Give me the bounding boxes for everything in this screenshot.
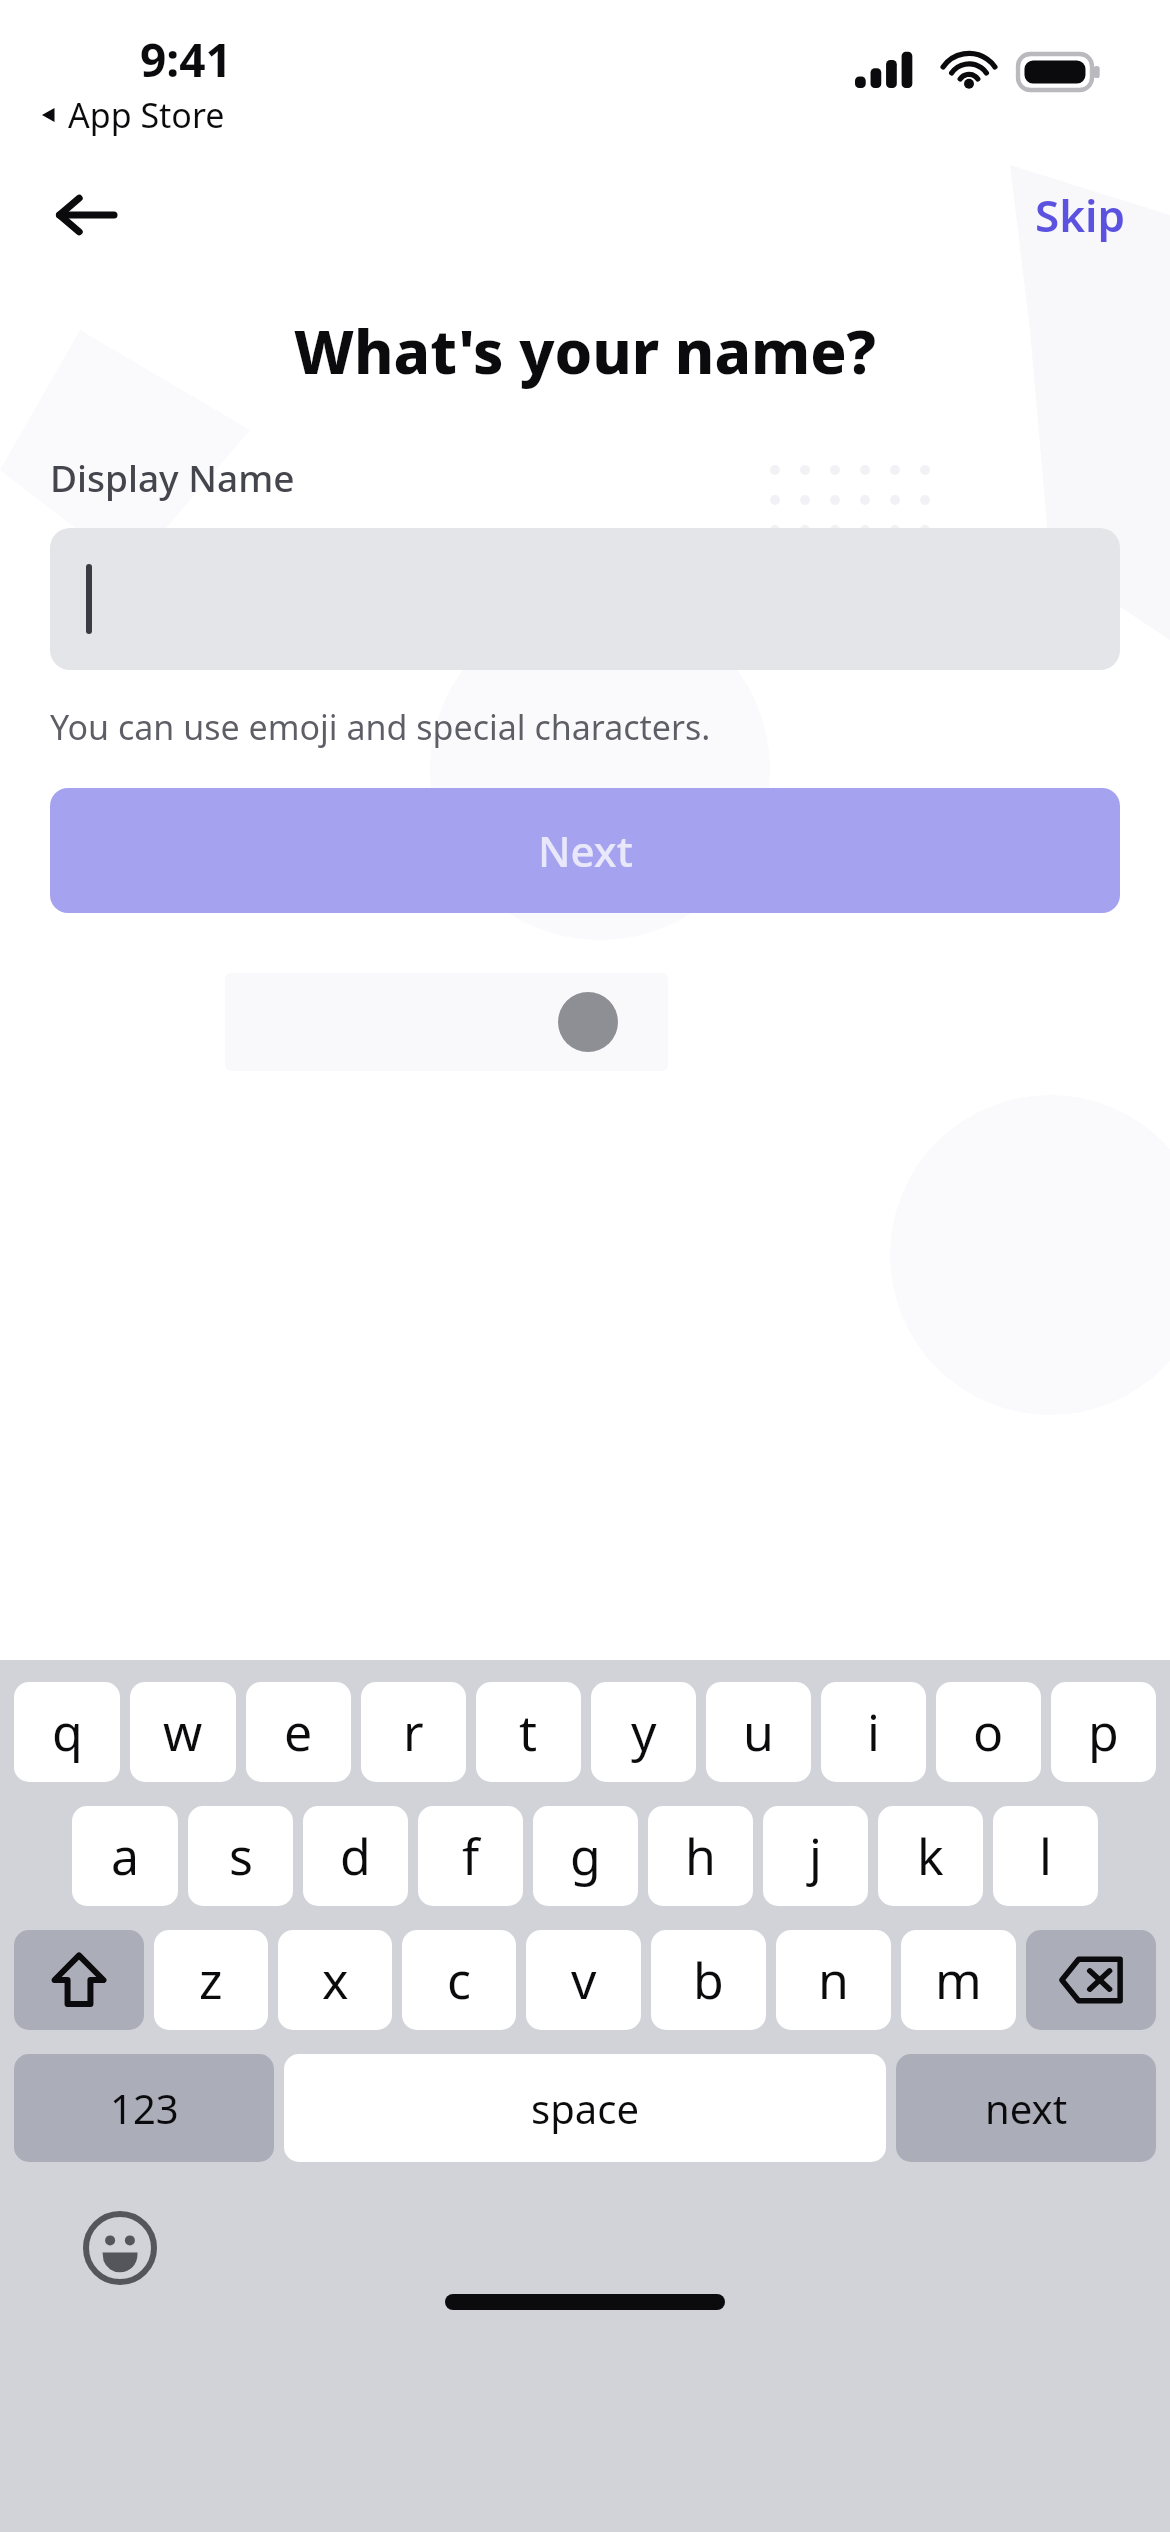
button[interactable]: i: [821, 1682, 926, 1782]
button[interactable]: o: [936, 1682, 1041, 1782]
button[interactable]: 123: [14, 2054, 274, 2162]
button[interactable]: next: [896, 2054, 1156, 2162]
button[interactable]: Next: [50, 788, 1120, 913]
staticText: App Store: [68, 92, 225, 138]
button[interactable]: y: [591, 1682, 696, 1782]
button[interactable]: Back: [30, 160, 140, 270]
staticText: q: [52, 1698, 83, 1766]
button[interactable]: Shift: [14, 1930, 144, 2030]
button[interactable]: c: [402, 1930, 516, 2030]
button[interactable]: w: [130, 1682, 236, 1782]
staticText: c: [447, 1946, 471, 2014]
staticText: p: [1088, 1698, 1119, 1766]
button[interactable]: Backspace: [1026, 1930, 1156, 2030]
staticText: v: [571, 1946, 597, 2014]
staticText: n: [818, 1946, 849, 2014]
staticText: space: [531, 2081, 639, 2135]
button[interactable]: g: [533, 1806, 638, 1906]
staticText: y: [631, 1698, 657, 1766]
staticText: 9:41: [140, 28, 232, 91]
button[interactable]: p: [1051, 1682, 1156, 1782]
button[interactable]: Emoji: [78, 2206, 162, 2290]
button[interactable]: e: [246, 1682, 351, 1782]
staticText: i: [867, 1698, 880, 1766]
button[interactable]: d: [303, 1806, 408, 1906]
button[interactable]: v: [526, 1930, 641, 2030]
staticText: m: [935, 1946, 982, 2014]
button[interactable]: u: [706, 1682, 811, 1782]
staticText: l: [1039, 1822, 1052, 1890]
button[interactable]: x: [278, 1930, 392, 2030]
staticText: h: [685, 1822, 716, 1890]
button[interactable]: q: [14, 1682, 120, 1782]
button[interactable]: l: [993, 1806, 1098, 1906]
button[interactable]: k: [878, 1806, 983, 1906]
button[interactable]: Toggle: [225, 973, 668, 1071]
staticText: w: [163, 1698, 203, 1766]
button[interactable]: m: [901, 1930, 1016, 2030]
button[interactable]: b: [651, 1930, 766, 2030]
staticText: 123: [110, 2081, 179, 2135]
staticText: e: [284, 1698, 313, 1766]
staticText: j: [809, 1822, 822, 1890]
button[interactable]: r: [361, 1682, 466, 1782]
staticText: z: [199, 1946, 223, 2014]
button[interactable]: j: [763, 1806, 868, 1906]
button[interactable]: h: [648, 1806, 753, 1906]
staticText: t: [519, 1698, 538, 1766]
staticText: You can use emoji and special characters…: [50, 704, 711, 750]
button[interactable]: t: [476, 1682, 581, 1782]
button[interactable]: n: [776, 1930, 891, 2030]
staticText: a: [111, 1822, 140, 1890]
button[interactable]: z: [154, 1930, 268, 2030]
staticText: Display Name: [50, 452, 295, 502]
button[interactable]: f: [418, 1806, 523, 1906]
staticText: f: [462, 1822, 480, 1890]
staticText: x: [322, 1946, 349, 2014]
staticText: next: [985, 2081, 1068, 2135]
staticText: u: [743, 1698, 774, 1766]
staticText: Next: [538, 822, 633, 879]
button[interactable]: a: [72, 1806, 178, 1906]
staticText: k: [917, 1822, 944, 1890]
button[interactable]: s: [188, 1806, 293, 1906]
staticText: Skip: [1035, 185, 1126, 245]
button[interactable]: [50, 528, 1120, 670]
staticText: d: [340, 1822, 371, 1890]
staticText: r: [403, 1698, 424, 1766]
staticText: b: [693, 1946, 724, 2014]
staticText: o: [973, 1698, 1004, 1766]
button[interactable]: Skip: [1021, 175, 1140, 255]
staticText: s: [229, 1822, 253, 1890]
button[interactable]: space: [284, 2054, 886, 2162]
staticText: g: [570, 1822, 601, 1890]
staticText: What's your name?: [50, 310, 1120, 392]
